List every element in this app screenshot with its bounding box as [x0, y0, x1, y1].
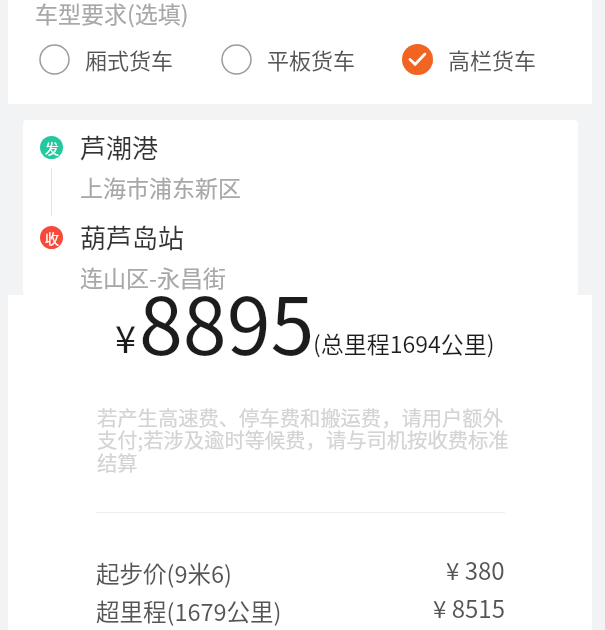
staticText: 收 — [45, 228, 59, 248]
staticText: 发 — [45, 138, 59, 158]
button[interactable]: 收 — [23, 218, 578, 296]
staticText: 芦潮港 — [80, 128, 159, 166]
staticText: ¥ — [115, 309, 137, 364]
staticText: 若产生高速费、停车费和搬运费，请用户额外支付;若涉及逾时等候费，请与司机按收费标… — [97, 402, 513, 477]
button[interactable]: 高栏货车 — [394, 39, 545, 79]
staticText: (总里程1694公里) — [313, 326, 495, 359]
staticText: 超里程(1679公里) — [96, 594, 282, 628]
staticText: 厢式货车 — [85, 43, 174, 75]
staticText: 8895 — [139, 263, 315, 377]
staticText: ¥ 380 — [446, 552, 505, 587]
button[interactable]: 厢式货车 — [31, 39, 182, 79]
staticText: 起步价(9米6) — [96, 556, 232, 590]
button[interactable]: 平板货车 — [213, 39, 364, 79]
staticText: ¥ 8515 — [433, 590, 505, 625]
staticText: 连山区-永昌街 — [80, 260, 226, 293]
staticText: 葫芦岛站 — [80, 218, 185, 256]
staticText: 上海市浦东新区 — [80, 170, 241, 203]
staticText: 平板货车 — [267, 43, 356, 75]
staticText: 车型要求(选填) — [35, 0, 189, 29]
staticText: 高栏货车 — [448, 43, 537, 75]
button[interactable]: 发 — [23, 128, 578, 214]
